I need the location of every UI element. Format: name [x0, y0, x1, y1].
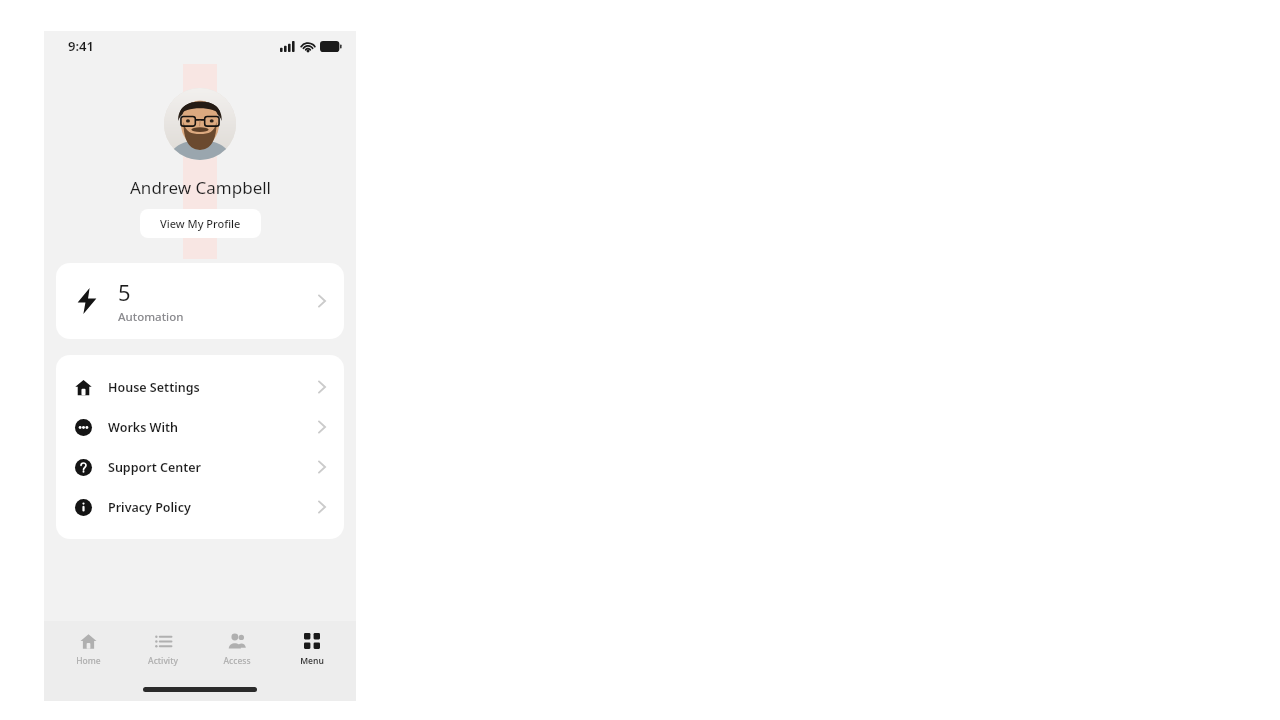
staticText: Access	[223, 655, 251, 667]
staticText: 9:41	[68, 37, 94, 55]
staticText: Automation	[118, 309, 184, 325]
staticText: Support Center	[108, 459, 202, 476]
staticText: View My Profile	[160, 216, 241, 231]
staticText: Works With	[108, 419, 179, 436]
button[interactable]: Privacy Policy	[56, 487, 344, 527]
button[interactable]: Support Center	[56, 447, 344, 487]
staticText: Home	[76, 655, 101, 667]
staticText: Menu	[300, 655, 324, 667]
button[interactable]: House Settings	[56, 367, 344, 407]
button[interactable]: Access	[206, 627, 268, 671]
button[interactable]: Works With	[56, 407, 344, 447]
button[interactable]: 5	[56, 263, 344, 339]
staticText: Privacy Policy	[108, 499, 191, 516]
button[interactable]: Home	[57, 627, 119, 671]
button[interactable]: Profile photo	[164, 88, 236, 160]
button[interactable]: Menu	[281, 627, 343, 671]
button[interactable]: View My Profile	[140, 209, 261, 238]
staticText: House Settings	[108, 379, 200, 396]
staticText: Activity	[148, 655, 178, 667]
staticText: 5	[118, 277, 131, 307]
staticText: Andrew Campbell	[130, 176, 271, 199]
button[interactable]: Activity	[132, 627, 194, 671]
